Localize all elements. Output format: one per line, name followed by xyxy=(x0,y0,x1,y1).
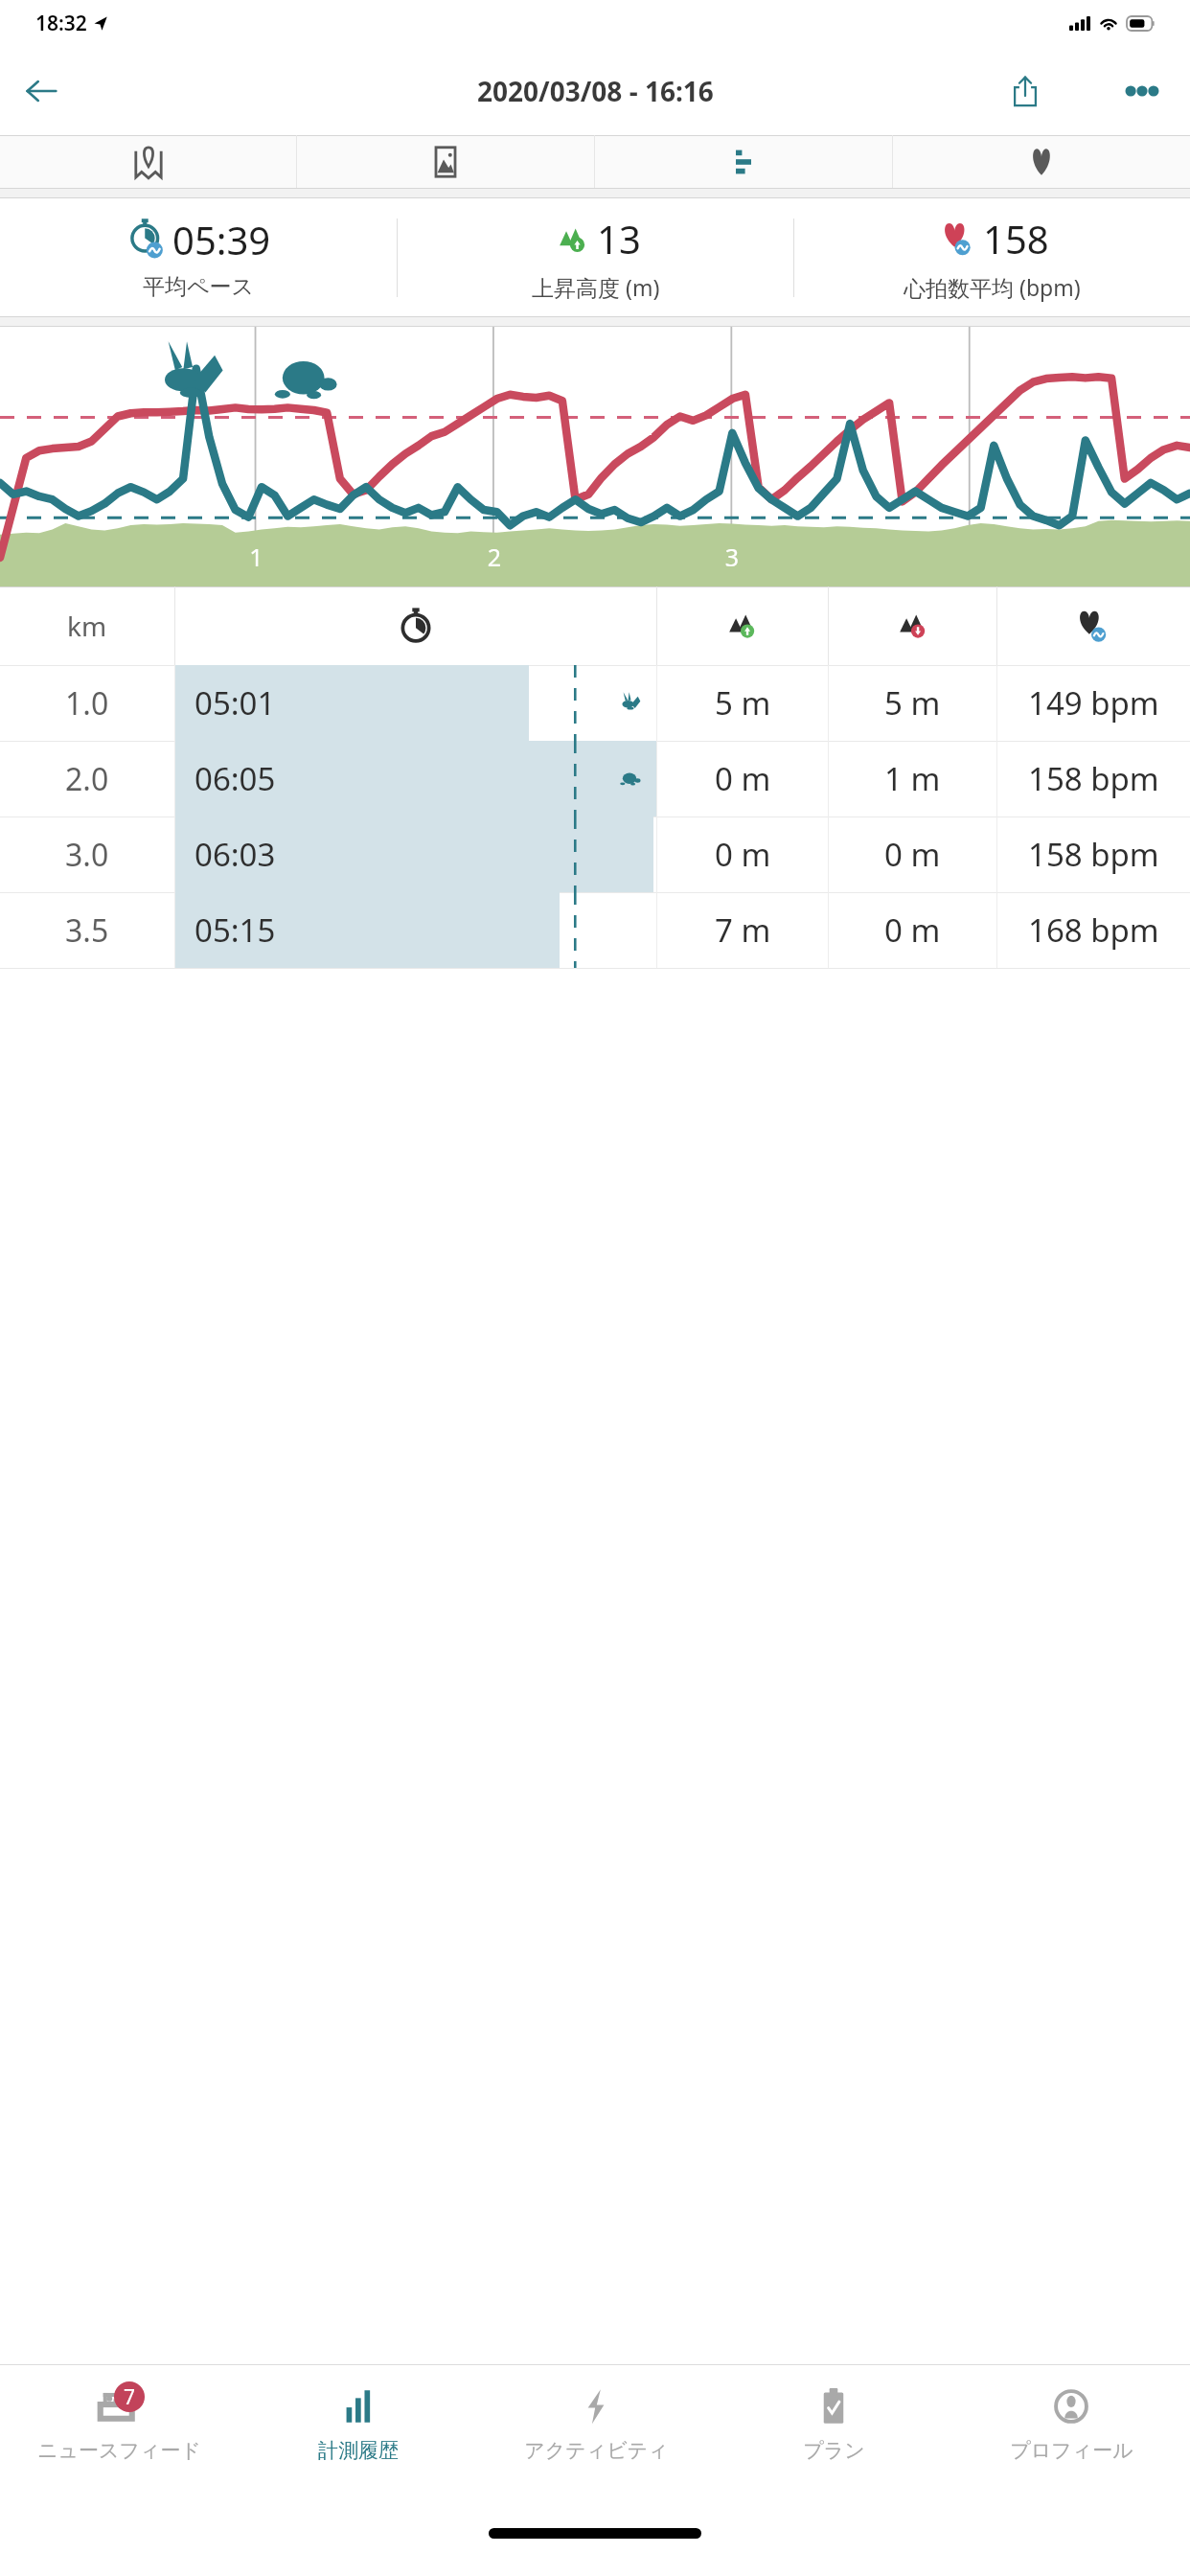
staticText: 1 xyxy=(137,540,376,573)
staticText: 2.0 xyxy=(65,758,109,800)
button[interactable]: Back xyxy=(10,59,73,123)
button[interactable]: More options xyxy=(1111,60,1173,122)
staticText: 149 bpm xyxy=(1028,681,1159,724)
button[interactable]: 158 xyxy=(794,198,1190,316)
staticText: 18:32 xyxy=(35,10,87,37)
button[interactable]: Heart rate xyxy=(893,135,1190,188)
staticText: 06:03 xyxy=(195,833,276,876)
staticText: 0 m xyxy=(884,833,941,876)
staticText: 7 m xyxy=(715,908,771,952)
staticText: 0 m xyxy=(715,757,771,800)
staticText: 7 xyxy=(124,2383,136,2411)
staticText: 05:15 xyxy=(195,908,276,952)
button[interactable]: プラン xyxy=(715,2365,952,2507)
staticText: 0 m xyxy=(884,908,941,952)
staticText: アクティビティ xyxy=(524,2438,669,2463)
staticText: 心拍数平均 (bpm) xyxy=(904,272,1081,302)
staticText: 0 m xyxy=(715,833,771,876)
staticText: 1.0 xyxy=(65,682,109,724)
staticText: km xyxy=(67,608,107,644)
staticText: 2020/03/08 - 16:16 xyxy=(477,73,714,109)
staticText: 3.5 xyxy=(65,909,109,952)
staticText: 06:05 xyxy=(195,757,276,800)
button[interactable]: Share xyxy=(995,60,1056,122)
button[interactable]: 計測履歴 xyxy=(239,2365,477,2507)
staticText: 計測履歴 xyxy=(318,2438,399,2463)
staticText: 上昇高度 (m) xyxy=(532,272,660,302)
staticText: 158 xyxy=(983,213,1049,264)
button[interactable]: プロフィール xyxy=(952,2365,1190,2507)
button[interactable]: 2.0 xyxy=(0,741,1190,816)
staticText: 168 bpm xyxy=(1028,908,1159,952)
staticText: 5 m xyxy=(715,681,771,724)
button[interactable]: 3.0 xyxy=(0,816,1190,892)
staticText: 158 bpm xyxy=(1028,833,1159,876)
staticText: 2 xyxy=(376,540,613,573)
button[interactable]: 13 xyxy=(398,198,793,316)
staticText: 05:39 xyxy=(172,214,271,265)
staticText: 平均ペース xyxy=(143,273,255,301)
button[interactable]: 1.0 xyxy=(0,665,1190,741)
staticText: 1 m xyxy=(884,757,941,800)
staticText: 5 m xyxy=(884,681,941,724)
staticText: 3 xyxy=(613,540,851,573)
staticText: 05:01 xyxy=(195,681,276,724)
button[interactable]: アクティビティ xyxy=(477,2365,715,2507)
staticText: 13 xyxy=(597,213,641,264)
staticText: 3.0 xyxy=(65,834,109,876)
staticText: プロフィール xyxy=(1010,2438,1133,2463)
staticText: ニュースフィード xyxy=(37,2438,201,2463)
button[interactable]: Map xyxy=(0,135,296,188)
button[interactable]: Photos xyxy=(297,135,594,188)
button[interactable]: 3.5 xyxy=(0,892,1190,968)
button[interactable]: Splits xyxy=(595,135,892,188)
button[interactable]: 7 xyxy=(0,2365,239,2507)
staticText: 158 bpm xyxy=(1028,757,1159,800)
staticText: プラン xyxy=(803,2438,865,2463)
button[interactable]: 05:39 xyxy=(0,198,397,316)
